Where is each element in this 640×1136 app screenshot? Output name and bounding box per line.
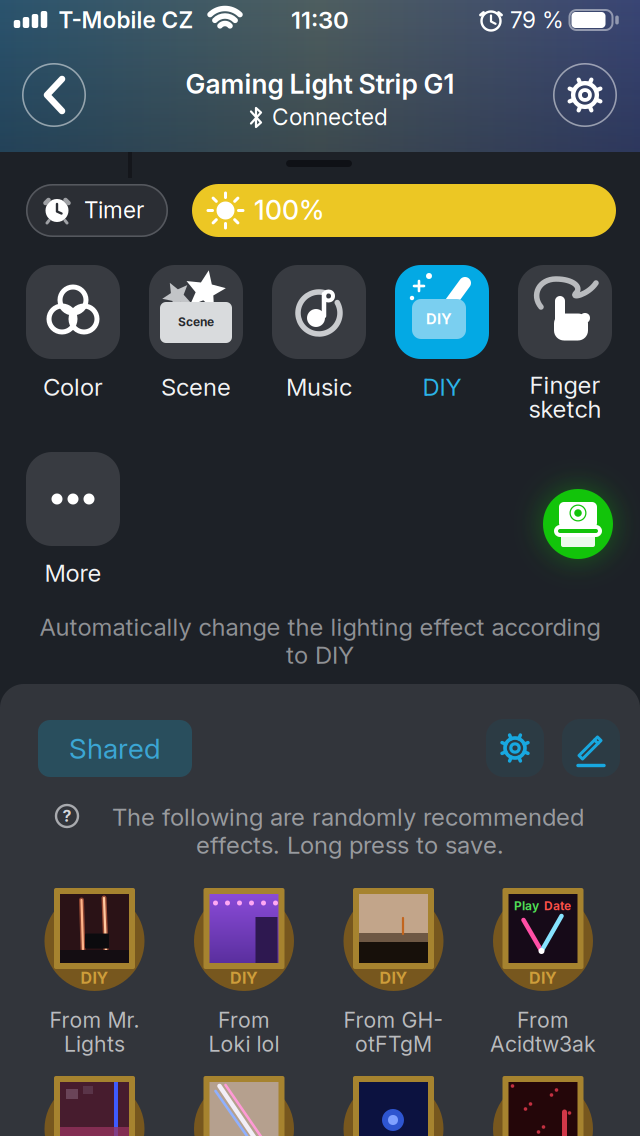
staticText: DIY bbox=[422, 373, 461, 401]
staticText: Shared bbox=[69, 732, 161, 765]
staticText: DIY bbox=[426, 310, 452, 328]
staticText: Finger bbox=[529, 371, 600, 399]
button[interactable]: Help bbox=[54, 803, 80, 829]
button[interactable]: Brightness 100% bbox=[192, 184, 616, 237]
button[interactable]: Shared bbox=[38, 720, 192, 777]
staticText: DIY bbox=[230, 969, 258, 987]
button[interactable]: DIY effect bbox=[192, 1074, 296, 1136]
staticText: effects. Long press to save. bbox=[196, 831, 504, 859]
staticText: 11:30 bbox=[291, 6, 349, 34]
staticText: Lights bbox=[64, 1031, 125, 1057]
button[interactable]: Music bbox=[272, 265, 366, 359]
staticText: to DIY bbox=[286, 641, 354, 669]
button[interactable]: DIY effect bbox=[491, 886, 595, 993]
staticText: DIY bbox=[529, 969, 557, 987]
button[interactable]: Back bbox=[22, 63, 86, 127]
staticText: Automatically change the lighting effect… bbox=[39, 613, 600, 641]
staticText: Scene bbox=[178, 315, 214, 329]
button[interactable]: DIY effect bbox=[491, 1074, 595, 1136]
staticText: Loki lol bbox=[208, 1031, 279, 1057]
staticText: 100% bbox=[254, 194, 324, 226]
staticText: From Mr. bbox=[49, 1007, 139, 1033]
button[interactable]: Timer bbox=[26, 184, 168, 237]
staticText: 79 % bbox=[510, 7, 564, 33]
button[interactable]: Finger sketch bbox=[518, 265, 612, 359]
staticText: From bbox=[517, 1007, 569, 1033]
staticText: ? bbox=[62, 807, 71, 825]
button[interactable]: Scene bbox=[149, 265, 243, 359]
staticText: DIY bbox=[80, 969, 108, 987]
button[interactable]: Effect settings bbox=[486, 719, 544, 777]
staticText: Play bbox=[514, 899, 539, 913]
staticText: More bbox=[44, 559, 101, 587]
button[interactable]: DIY effect bbox=[42, 886, 146, 993]
staticText: T-Mobile CZ bbox=[58, 7, 193, 33]
staticText: Music bbox=[286, 373, 352, 401]
button[interactable]: Snapshot bbox=[543, 489, 613, 559]
staticText: From bbox=[218, 1007, 270, 1033]
button[interactable]: DIY effect bbox=[341, 1074, 445, 1136]
button[interactable]: DIY effect bbox=[42, 1074, 146, 1136]
button[interactable]: DIY bbox=[395, 265, 489, 359]
staticText: sketch bbox=[528, 395, 601, 423]
staticText: Scene bbox=[161, 373, 231, 401]
staticText: The following are randomly recommended bbox=[112, 803, 584, 831]
button[interactable]: Edit bbox=[562, 719, 620, 777]
staticText: DIY bbox=[379, 969, 407, 987]
staticText: Timer bbox=[84, 197, 144, 223]
staticText: Acidtw3ak bbox=[490, 1031, 596, 1057]
button[interactable]: DIY effect bbox=[192, 886, 296, 993]
button[interactable]: Color bbox=[26, 265, 120, 359]
staticText: Date bbox=[544, 899, 571, 913]
button[interactable]: DIY effect bbox=[341, 886, 445, 993]
staticText: From GH- bbox=[343, 1007, 443, 1033]
staticText: Connected bbox=[272, 104, 388, 130]
staticText: Gaming Light Strip G1 bbox=[185, 68, 454, 100]
button[interactable]: Settings bbox=[553, 63, 617, 127]
staticText: Color bbox=[43, 373, 103, 401]
button[interactable]: More bbox=[26, 452, 120, 546]
staticText: otFTgM bbox=[355, 1031, 432, 1057]
